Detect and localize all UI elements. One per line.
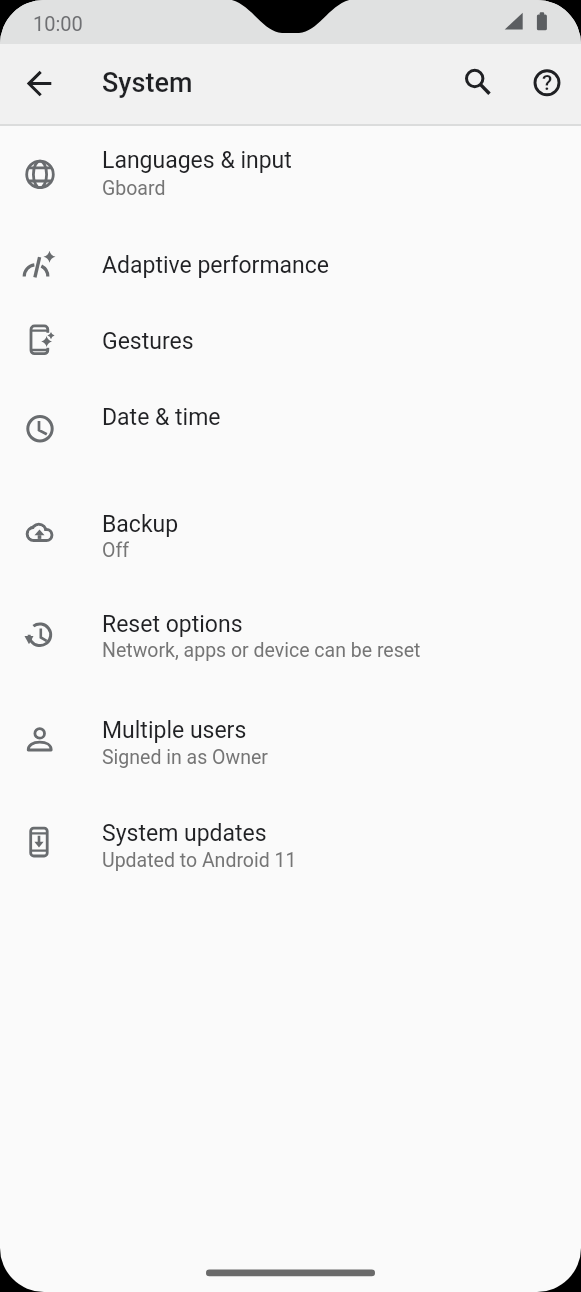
button[interactable]: Gestures — [0, 304, 581, 384]
button[interactable]: Adaptive performance — [0, 228, 581, 304]
button[interactable] — [523, 60, 571, 108]
button[interactable]: System updates — [0, 794, 581, 898]
staticText: Languages & input — [102, 147, 292, 174]
staticText: Gboard — [102, 177, 166, 200]
staticText: Gestures — [102, 328, 194, 355]
button[interactable] — [16, 60, 64, 108]
button[interactable]: Languages & input — [0, 125, 581, 228]
staticText: Date & time — [102, 404, 221, 431]
staticText: Reset options — [102, 611, 243, 638]
staticText: Off — [102, 539, 129, 562]
staticText: Updated to Android 11 — [102, 849, 297, 872]
staticText: 10:00 — [33, 12, 83, 35]
button[interactable]: Date & time — [0, 384, 581, 475]
staticText: Backup — [102, 511, 179, 538]
staticText: Network, apps or device can be reset — [102, 639, 421, 662]
staticText: System updates — [102, 820, 267, 847]
button[interactable]: Multiple users — [0, 689, 581, 794]
staticText: Adaptive performance — [102, 252, 330, 279]
button[interactable]: Reset options — [0, 586, 581, 689]
staticText: System — [102, 67, 193, 99]
staticText: ? — [542, 71, 553, 96]
staticText: Signed in as Owner — [102, 746, 268, 769]
staticText: Multiple users — [102, 717, 247, 744]
button[interactable]: Backup — [0, 475, 581, 586]
button[interactable] — [454, 60, 502, 108]
